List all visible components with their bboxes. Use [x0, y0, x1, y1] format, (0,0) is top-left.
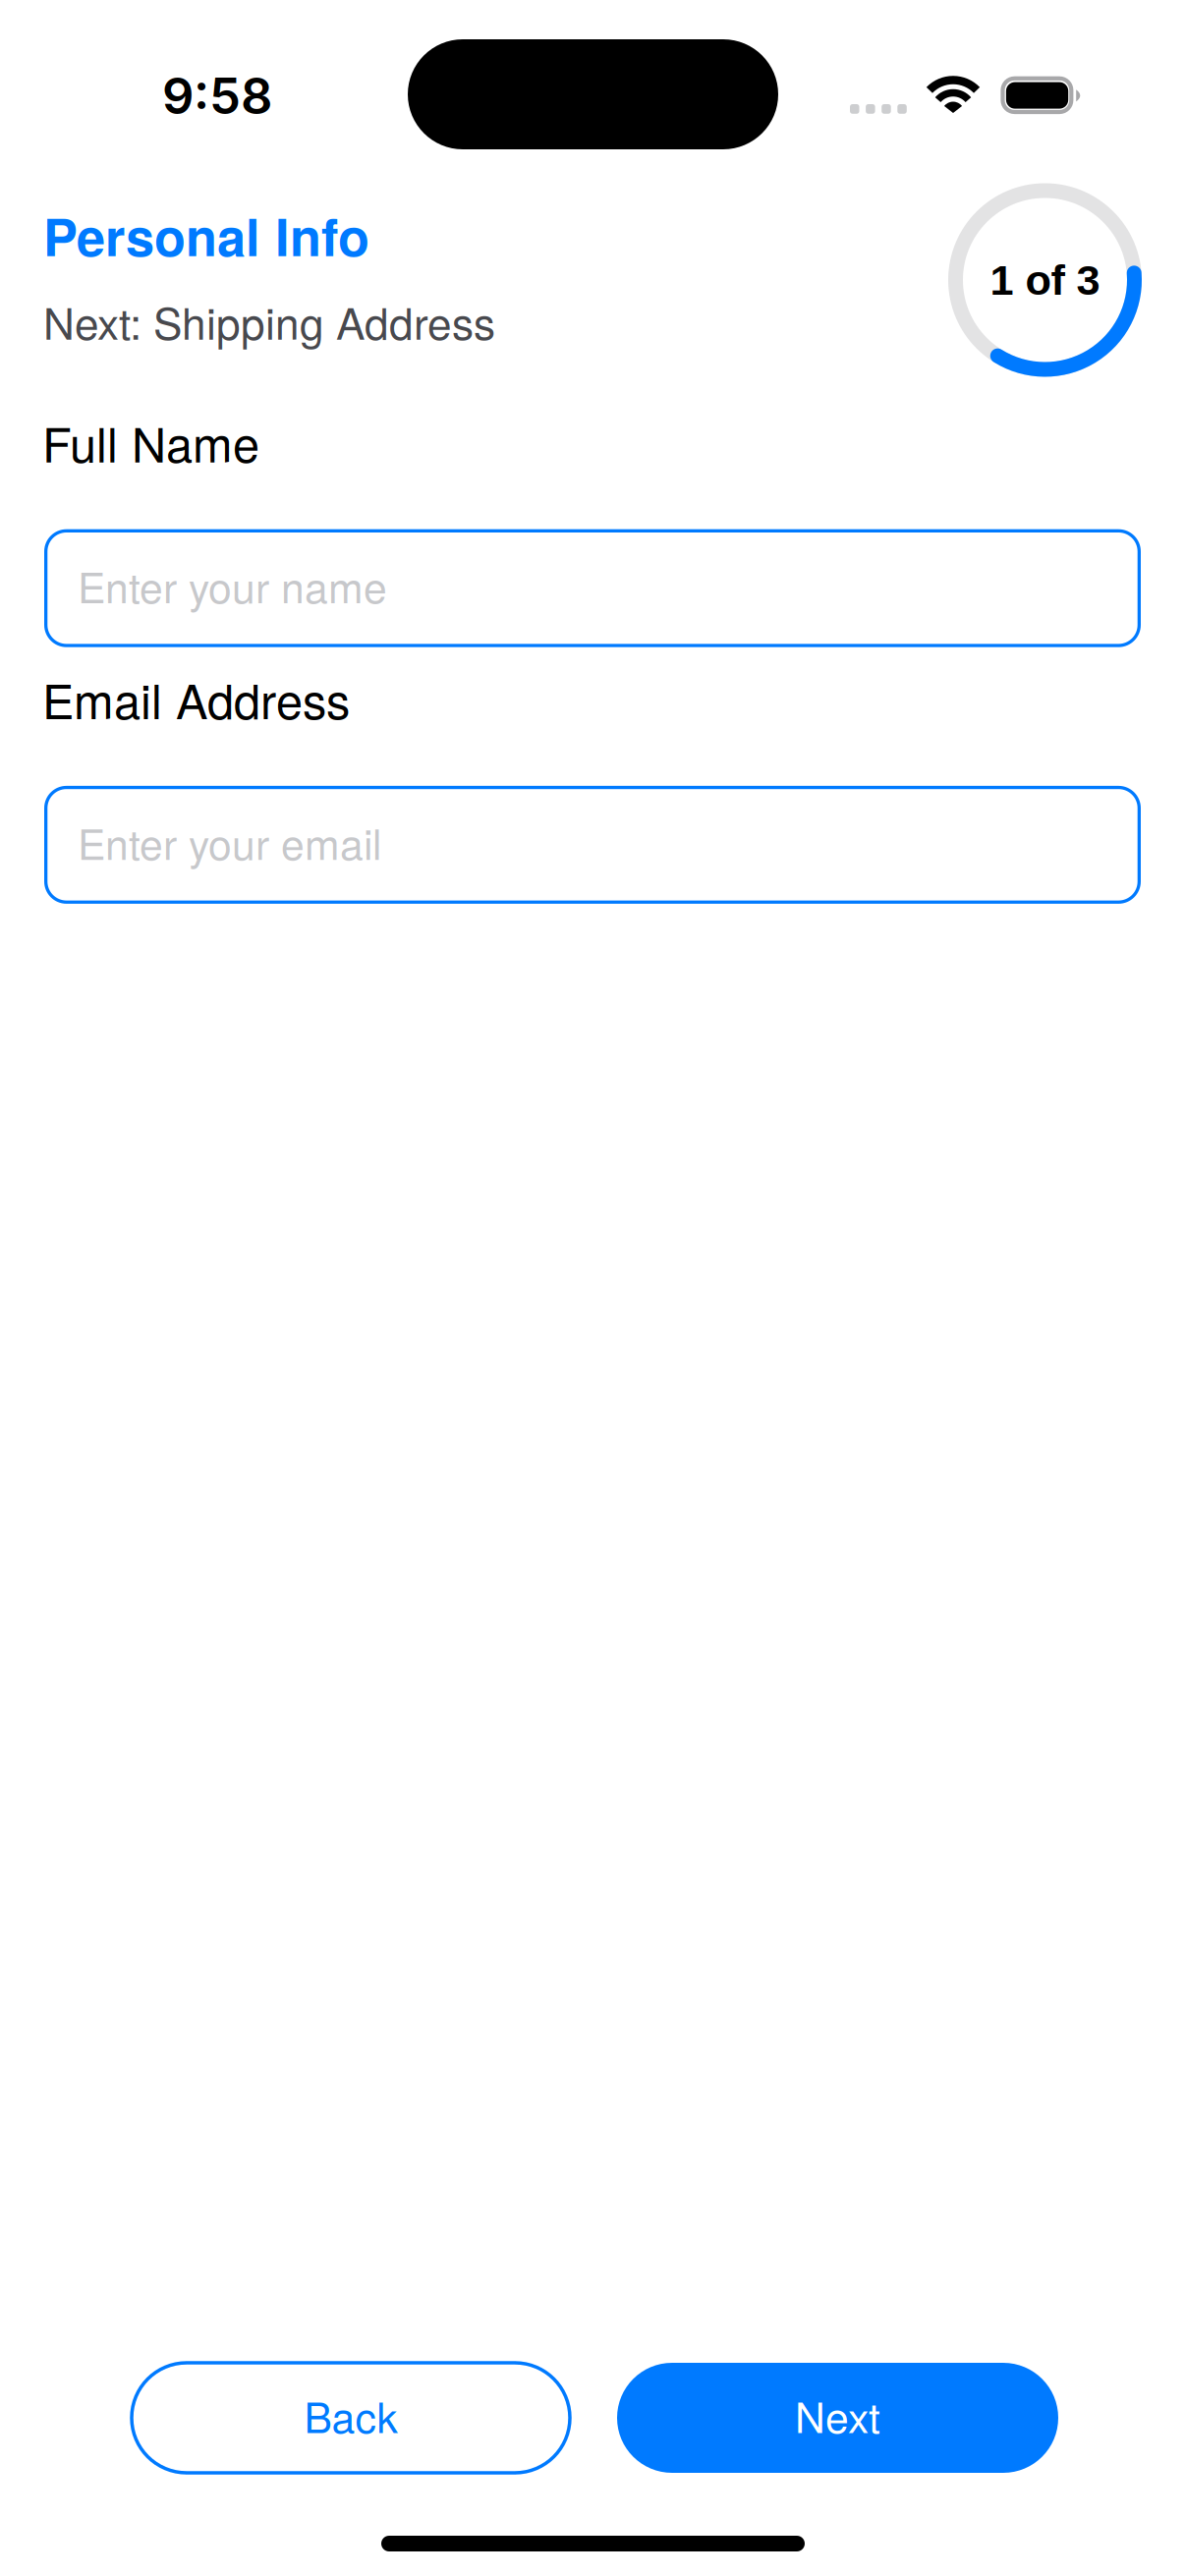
staticText: 1 of 3: [990, 256, 1100, 304]
button[interactable]: Enter your name: [44, 529, 1141, 647]
staticText: Next: Shipping Address: [43, 290, 495, 352]
button[interactable]: Back: [132, 2363, 570, 2473]
staticText: Next: [795, 2385, 880, 2445]
button[interactable]: Next: [617, 2363, 1058, 2473]
staticText: Email Address: [42, 664, 350, 733]
staticText: Personal Info: [43, 198, 369, 272]
button[interactable]: Enter your email: [44, 786, 1141, 904]
staticText: 9:58: [162, 66, 272, 126]
staticText: Enter your email: [78, 812, 381, 872]
staticText: Full Name: [42, 408, 259, 476]
staticText: Enter your name: [78, 555, 387, 615]
staticText: Back: [304, 2385, 397, 2445]
